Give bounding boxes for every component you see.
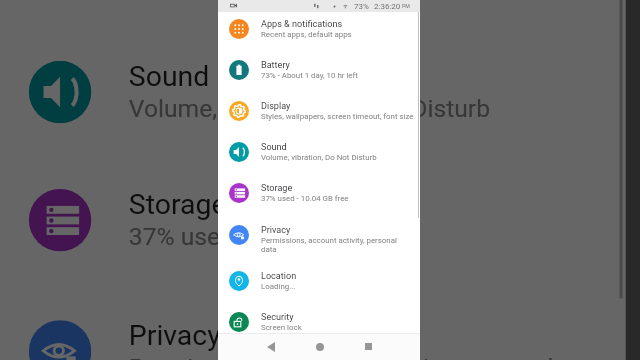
staticText: Privacy bbox=[261, 225, 291, 236]
staticText: Styles, wallpapers, screen timeout, font… bbox=[261, 112, 414, 121]
staticText: Storage bbox=[129, 189, 229, 223]
button[interactable]: Security bbox=[218, 301, 420, 342]
button[interactable]: Battery bbox=[218, 49, 420, 90]
button[interactable]: Sound bbox=[0, 26, 626, 154]
button[interactable]: Home bbox=[306, 337, 334, 356]
button[interactable]: Storage bbox=[0, 154, 626, 283]
staticText: Sound bbox=[129, 61, 210, 95]
staticText: Permissions, account activity, personal … bbox=[261, 236, 401, 254]
staticText: Display bbox=[261, 101, 291, 112]
staticText: Permissions, account activity, personal … bbox=[129, 354, 566, 360]
button[interactable]: Display bbox=[0, 0, 626, 26]
staticText: Screen lock bbox=[261, 323, 302, 332]
staticText: Loading... bbox=[261, 282, 296, 291]
staticText: 37% used - 10.04 GB free bbox=[129, 223, 404, 251]
staticText: Recent apps, default apps bbox=[261, 30, 352, 39]
staticText: Privacy bbox=[129, 320, 223, 355]
staticText: Security bbox=[261, 312, 294, 323]
button[interactable]: Location bbox=[218, 260, 420, 301]
staticText: Storage bbox=[261, 183, 293, 194]
button[interactable]: Apps & notifications bbox=[218, 8, 420, 49]
staticText: 2:36:20 bbox=[374, 2, 401, 11]
staticText: PM bbox=[402, 3, 410, 9]
button[interactable]: Display bbox=[218, 90, 420, 131]
staticText: Sound bbox=[261, 142, 287, 153]
button[interactable]: Storage bbox=[218, 172, 420, 213]
staticText: Volume, vibration, Do Not Disturb bbox=[129, 95, 491, 123]
staticText: Volume, vibration, Do Not Disturb bbox=[261, 153, 377, 162]
button[interactable]: Sound bbox=[218, 131, 420, 172]
button[interactable]: Recent apps bbox=[354, 337, 382, 356]
staticText: Location bbox=[261, 271, 297, 282]
staticText: 73% bbox=[354, 2, 369, 11]
staticText: Battery bbox=[261, 60, 290, 71]
staticText: 37% used - 10.04 GB free bbox=[261, 194, 349, 203]
button[interactable]: Privacy bbox=[218, 213, 420, 260]
staticText: Apps & notifications bbox=[261, 19, 343, 30]
button[interactable]: Back bbox=[257, 337, 285, 356]
staticText: 73% - About 1 day, 10 hr left bbox=[261, 71, 358, 80]
button[interactable]: Privacy bbox=[0, 283, 626, 360]
